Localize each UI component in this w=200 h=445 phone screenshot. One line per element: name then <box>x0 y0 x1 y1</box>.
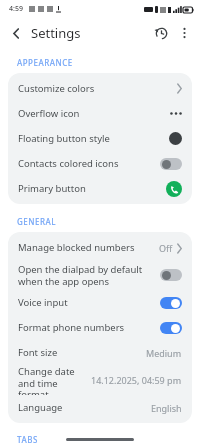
button[interactable]: Language <box>8 395 192 420</box>
staticText: APPEARANCE <box>17 57 73 68</box>
staticText: Contacts colored icons <box>18 157 156 170</box>
staticText: Floating button style <box>18 132 165 145</box>
staticText: English <box>151 402 182 414</box>
staticText: Open the dialpad by default when the app… <box>18 263 156 287</box>
button[interactable]: Floating button style <box>8 126 192 151</box>
button[interactable]: Primary button <box>8 176 192 201</box>
staticText: Language <box>18 401 147 414</box>
staticText: 4:59 <box>9 4 23 14</box>
staticText: Overflow icon <box>18 107 166 120</box>
button[interactable]: Off <box>160 158 182 170</box>
button[interactable]: Format phone numbers <box>8 315 192 340</box>
button[interactable]: Change date and time format <box>8 365 192 395</box>
staticText: 14.12.2025, 04:59 pm <box>91 374 182 386</box>
staticText: Primary button <box>18 182 162 195</box>
staticText: GENERAL <box>17 216 57 227</box>
button[interactable]: Overflow icon <box>8 101 192 126</box>
staticText: Medium <box>146 347 182 359</box>
staticText: Font size <box>18 346 142 359</box>
button[interactable]: Customize colors <box>8 76 192 101</box>
button[interactable]: Back <box>6 23 26 43</box>
staticText: Change date and time format <box>18 365 87 395</box>
button[interactable]: On <box>160 297 182 309</box>
button[interactable]: Open the dialpad by default when the app… <box>8 260 192 290</box>
button[interactable]: Off <box>160 269 182 281</box>
button[interactable]: Contacts colored icons <box>8 151 192 176</box>
staticText: Settings <box>31 24 81 42</box>
staticText: Voice input <box>18 296 156 309</box>
button[interactable]: Voice input <box>8 290 192 315</box>
button[interactable]: More options <box>173 22 195 44</box>
staticText: TABS <box>17 434 38 445</box>
staticText: Customize colors <box>18 82 173 95</box>
button[interactable]: Manage blocked numbers <box>8 235 192 260</box>
button[interactable]: On <box>160 322 182 334</box>
button[interactable]: Font size <box>8 340 192 365</box>
staticText: Format phone numbers <box>18 321 156 334</box>
button[interactable]: Call history <box>149 21 173 45</box>
staticText: Off <box>159 242 173 254</box>
staticText: Manage blocked numbers <box>18 241 155 254</box>
